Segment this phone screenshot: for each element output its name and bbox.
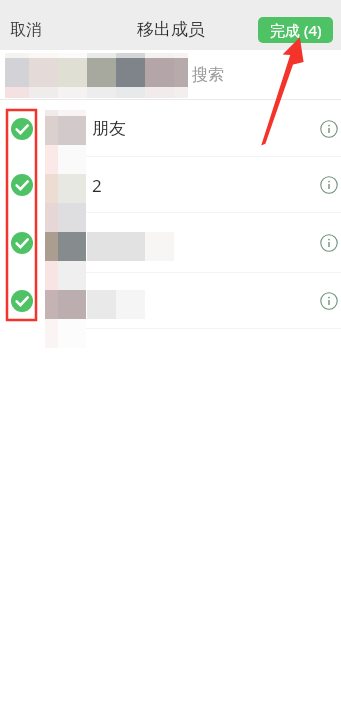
button[interactable]: Member info [317, 173, 341, 197]
button[interactable]: Member info [0, 273, 341, 329]
staticText: 2 [92, 174, 102, 197]
button[interactable]: Member info [317, 289, 341, 313]
button[interactable]: 完成 (4) [258, 17, 333, 43]
button[interactable]: 2 [0, 157, 341, 213]
button[interactable]: Member info [317, 117, 341, 141]
staticText: 朋友 [92, 118, 126, 139]
button[interactable]: Member info [317, 231, 341, 255]
staticText: 完成 (4) [270, 20, 322, 40]
button[interactable]: 朋友 [0, 100, 341, 157]
staticText: 移出成员 [137, 19, 205, 40]
button[interactable]: 取消 [0, 9, 52, 50]
staticText: 搜索 [192, 65, 224, 85]
button[interactable]: Member info [0, 213, 341, 273]
staticText: 取消 [10, 20, 42, 39]
